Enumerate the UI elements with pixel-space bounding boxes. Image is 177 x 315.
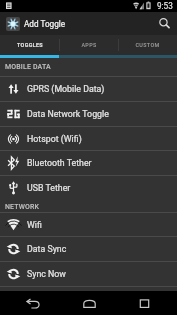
- button[interactable]: Recent apps: [121, 291, 167, 315]
- staticText: MOBILE DATA: [5, 63, 51, 71]
- button[interactable]: TOGGLES: [0, 35, 59, 55]
- staticText: Add Toggle: [24, 19, 66, 29]
- button[interactable]: Wifi: [0, 213, 177, 236]
- staticText: NETWORK: [5, 203, 40, 211]
- button[interactable]: Sync Now: [0, 262, 177, 286]
- staticText: GPRS (Mobile Data): [27, 84, 105, 94]
- button[interactable]: Add Toggle: [0, 12, 151, 35]
- staticText: TOGGLES: [17, 42, 43, 48]
- staticText: 9:53: [157, 1, 173, 11]
- button[interactable]: Bluetooth Tether: [0, 151, 177, 175]
- button[interactable]: Home: [66, 291, 112, 315]
- button[interactable]: Back: [10, 291, 56, 315]
- staticText: Sync Now: [27, 269, 66, 279]
- staticText: Wifi: [27, 220, 42, 230]
- button[interactable]: USB Tether: [0, 176, 177, 200]
- button[interactable]: APPS: [59, 35, 118, 55]
- button[interactable]: Data Network Toggle: [0, 102, 177, 126]
- staticText: Data Sync: [27, 244, 67, 254]
- button[interactable]: Hotspot (Wifi): [0, 127, 177, 150]
- staticText: USB Tether: [27, 183, 71, 193]
- button[interactable]: Search: [151, 12, 177, 35]
- button[interactable]: CUSTOM: [118, 35, 177, 55]
- button[interactable]: GPRS (Mobile Data): [0, 77, 177, 101]
- staticText: Hotspot (Wifi): [27, 134, 82, 144]
- staticText: APPS: [81, 42, 97, 48]
- button[interactable]: Data Sync: [0, 237, 177, 261]
- staticText: Bluetooth Tether: [27, 158, 92, 168]
- staticText: Data Network Toggle: [27, 109, 109, 119]
- staticText: CUSTOM: [135, 42, 160, 48]
